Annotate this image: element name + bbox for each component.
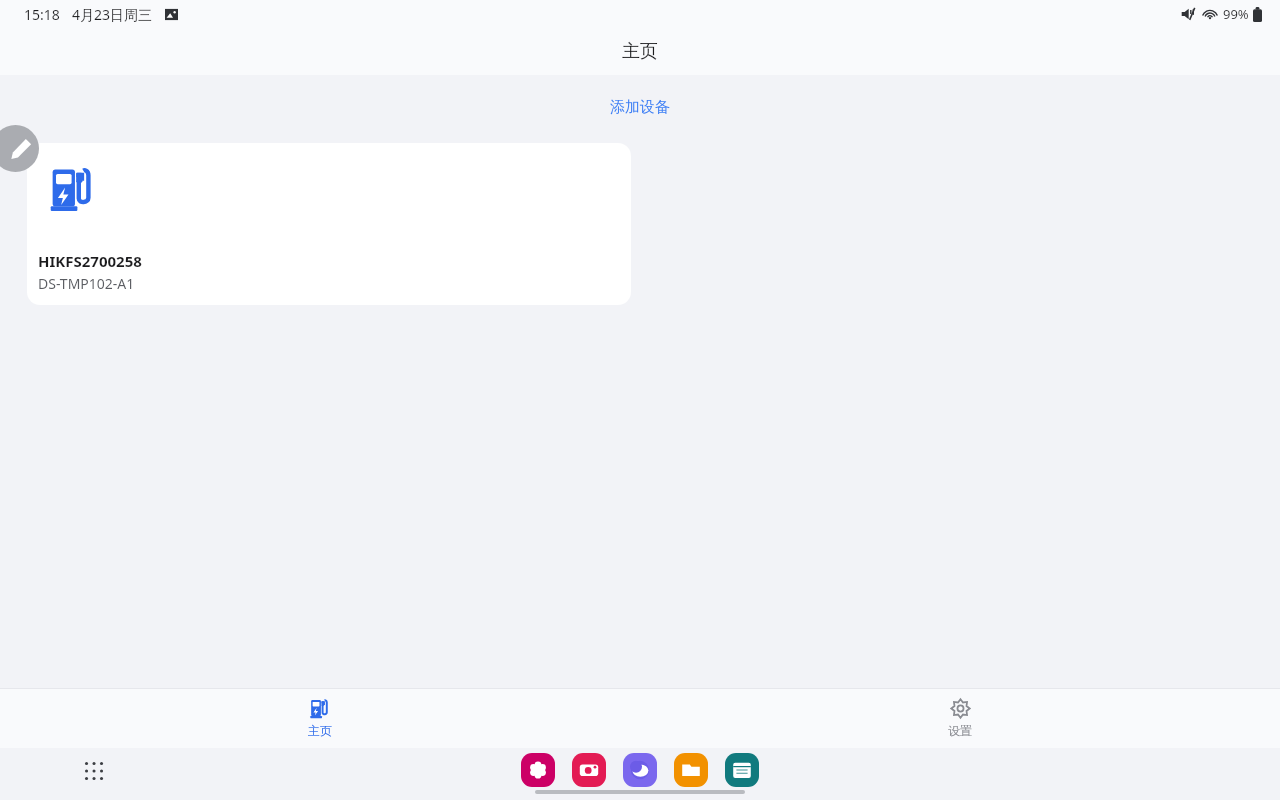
button[interactable]: 设置 bbox=[926, 692, 994, 744]
staticText: DS-TMP102-A1 bbox=[38, 274, 135, 293]
button[interactable]: HIKFS2700258 bbox=[27, 143, 631, 305]
staticText: HIKFS2700258 bbox=[38, 251, 142, 271]
staticText: 设置 bbox=[948, 723, 972, 738]
button[interactable]: 编辑 bbox=[0, 125, 39, 172]
staticText: 添加设备 bbox=[610, 98, 670, 117]
staticText: 主页 bbox=[308, 723, 332, 738]
staticText: 99% bbox=[1223, 5, 1249, 23]
staticText: 主页 bbox=[622, 40, 658, 63]
button[interactable]: 添加设备 bbox=[596, 93, 684, 122]
staticText: 4月23日周三 bbox=[72, 5, 153, 24]
button[interactable]: Internet bbox=[623, 753, 657, 787]
staticText: 15:18 bbox=[24, 5, 60, 24]
button[interactable]: Calendar bbox=[725, 753, 759, 787]
button[interactable]: Gallery bbox=[521, 753, 555, 787]
button[interactable]: 主页 bbox=[286, 692, 354, 744]
button[interactable]: Camera bbox=[572, 753, 606, 787]
button[interactable]: My Files bbox=[674, 753, 708, 787]
button[interactable]: 应用列表 bbox=[76, 753, 112, 789]
